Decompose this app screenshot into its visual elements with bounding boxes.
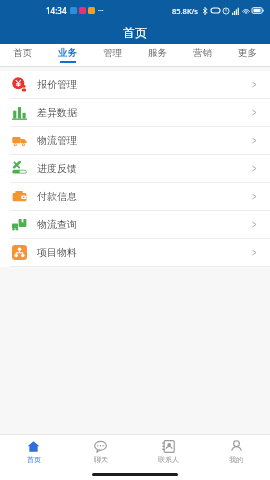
staticText: 管理: [103, 47, 122, 59]
staticText: 首页: [123, 25, 147, 40]
other: 聊天: [94, 440, 107, 453]
button[interactable]: 首页: [0, 435, 67, 469]
other: 联系人: [162, 440, 175, 453]
staticText: 联系人: [158, 455, 179, 464]
button[interactable]: 联系人: [134, 435, 202, 469]
button[interactable]: 聊天: [67, 435, 134, 469]
button[interactable]: 差异数据: [0, 99, 270, 126]
staticText: 聊天: [94, 455, 108, 464]
staticText: 付款信息: [37, 190, 77, 203]
other: 首页: [27, 440, 40, 453]
staticText: 我的: [229, 455, 243, 464]
staticText: 首页: [27, 455, 41, 464]
staticText: 物流查询: [37, 218, 77, 231]
button[interactable]: 首页: [0, 44, 45, 66]
staticText: 业务: [58, 47, 77, 59]
staticText: 营销: [193, 47, 212, 59]
button[interactable]: 报价管理: [0, 71, 270, 98]
staticText: ···: [98, 6, 104, 16]
other: 我的: [230, 440, 243, 453]
button[interactable]: 管理: [90, 44, 135, 66]
staticText: 首页: [13, 47, 32, 59]
button[interactable]: 进度反馈: [0, 155, 270, 182]
button[interactable]: 我的: [202, 435, 270, 469]
staticText: 物流管理: [37, 134, 77, 147]
button[interactable]: 物流管理: [0, 127, 270, 154]
button[interactable]: 更多: [225, 44, 270, 66]
button[interactable]: 业务: [45, 44, 90, 66]
staticText: 服务: [148, 47, 167, 59]
button[interactable]: 项目物料: [0, 239, 270, 266]
staticText: 项目物料: [37, 246, 77, 259]
staticText: 进度反馈: [37, 162, 77, 175]
button[interactable]: 营销: [180, 44, 225, 66]
staticText: 14:34: [46, 5, 67, 16]
staticText: 85.8K/s: [172, 6, 198, 16]
staticText: 报价管理: [37, 78, 77, 91]
button[interactable]: 服务: [135, 44, 180, 66]
button[interactable]: 付款信息: [0, 183, 270, 210]
button[interactable]: 物流查询: [0, 211, 270, 238]
staticText: 差异数据: [37, 106, 77, 119]
staticText: 更多: [238, 47, 257, 59]
